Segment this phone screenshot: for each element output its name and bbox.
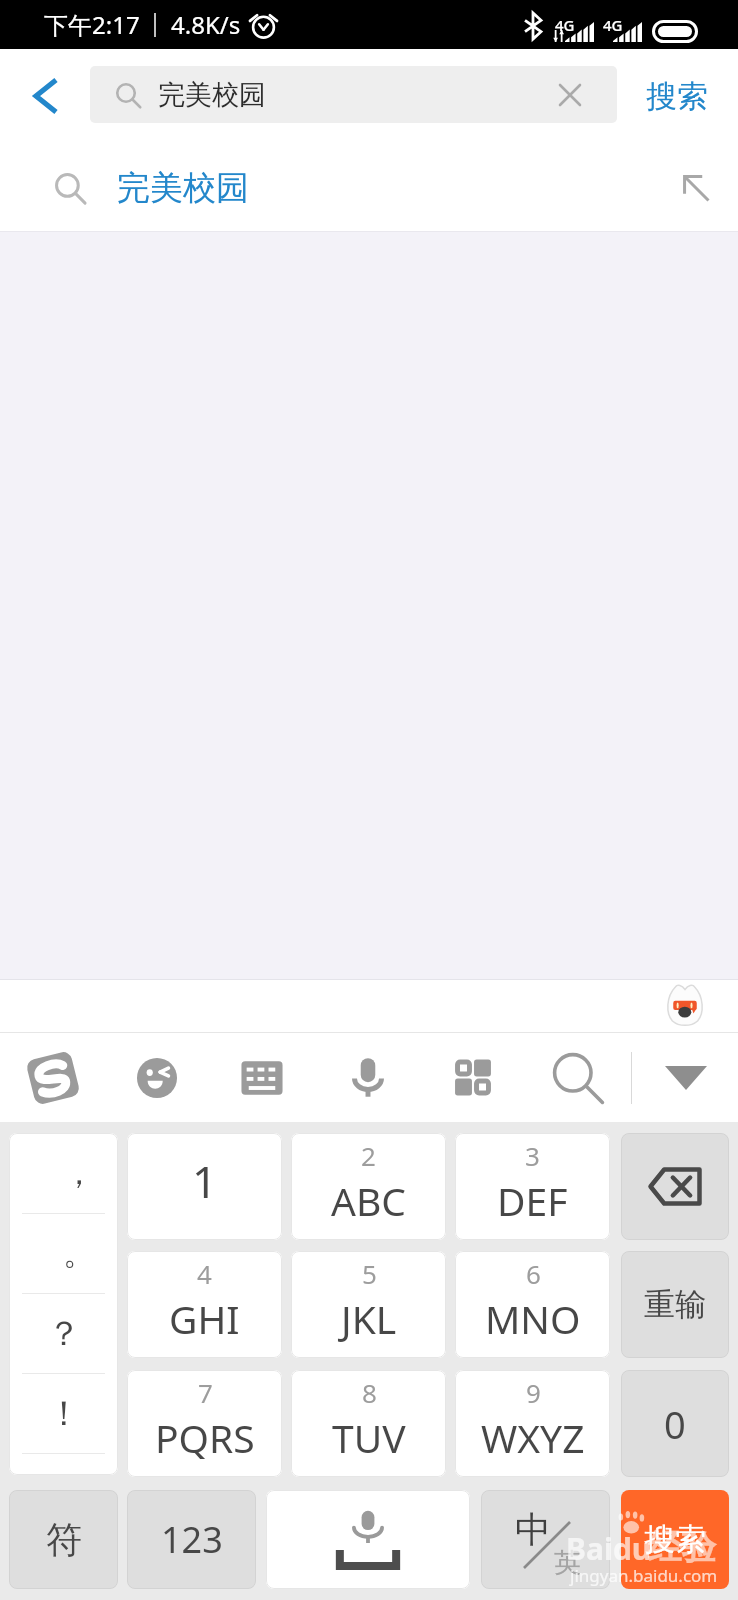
- button[interactable]: Hide keyboard: [634, 1033, 738, 1122]
- staticText: 8: [362, 1375, 377, 1410]
- staticText: 4.8K/s: [171, 8, 241, 41]
- button[interactable]: 搜索: [621, 1490, 729, 1589]
- staticText: 经验: [648, 1526, 716, 1569]
- staticText: 2: [361, 1138, 376, 1173]
- staticText: 3: [525, 1138, 540, 1173]
- button[interactable]: 4: [127, 1251, 282, 1358]
- button[interactable]: 8: [291, 1370, 446, 1477]
- button[interactable]: Back: [2, 52, 90, 140]
- button[interactable]: 1: [127, 1133, 282, 1240]
- staticText: MNO: [485, 1292, 581, 1345]
- staticText: PQRS: [155, 1411, 255, 1464]
- button[interactable]: 7: [127, 1370, 282, 1477]
- staticText: WXYZ: [481, 1411, 585, 1464]
- staticText: DEF: [497, 1174, 568, 1227]
- staticText: 搜索: [646, 77, 708, 116]
- button[interactable]: Sogou input: [9, 1033, 97, 1122]
- staticText: ！: [47, 1392, 81, 1435]
- staticText: 完美校园: [158, 78, 266, 112]
- staticText: 123: [161, 1515, 223, 1564]
- button[interactable]: ，: [9, 1133, 118, 1475]
- staticText: TUV: [332, 1411, 406, 1464]
- button[interactable]: Assistant: [664, 984, 706, 1026]
- button[interactable]: Chinese / English: [481, 1490, 610, 1589]
- staticText: GHI: [169, 1292, 240, 1345]
- staticText: 7: [198, 1375, 213, 1410]
- button[interactable]: 5: [291, 1251, 446, 1358]
- button[interactable]: Clear: [541, 66, 598, 123]
- button[interactable]: 3: [455, 1133, 610, 1240]
- button[interactable]: Search: [534, 1033, 622, 1122]
- staticText: 9: [526, 1375, 541, 1410]
- staticText: jingyan.baidu.com: [570, 1564, 718, 1587]
- button[interactable]: 搜索: [627, 49, 727, 144]
- staticText: 4: [197, 1256, 212, 1291]
- staticText: 搜索: [644, 1520, 706, 1559]
- staticText: ？: [47, 1312, 81, 1355]
- staticText: 重输: [644, 1285, 706, 1324]
- staticText: ABC: [331, 1174, 406, 1227]
- button[interactable]: Use this query: [672, 164, 720, 212]
- staticText: ，: [63, 1153, 95, 1193]
- button[interactable]: Space: [266, 1490, 470, 1589]
- button[interactable]: 123: [127, 1490, 256, 1589]
- staticText: 5: [362, 1256, 377, 1291]
- button[interactable]: Backspace: [621, 1133, 729, 1240]
- staticText: 6: [526, 1256, 541, 1291]
- staticText: Baidu: [566, 1528, 652, 1569]
- staticText: 0: [664, 1398, 686, 1450]
- button[interactable]: 2: [291, 1133, 446, 1240]
- button[interactable]: 9: [455, 1370, 610, 1477]
- button[interactable]: 完美校园: [0, 144, 738, 232]
- staticText: 完美校园: [117, 167, 249, 209]
- button[interactable]: 0: [621, 1370, 729, 1477]
- staticText: 1: [192, 1151, 218, 1211]
- staticText: 英: [554, 1546, 581, 1580]
- button[interactable]: 完美校园: [90, 66, 617, 123]
- button[interactable]: 符: [9, 1490, 118, 1589]
- staticText: 符: [46, 1517, 82, 1562]
- button[interactable]: Keyboard layout: [218, 1033, 306, 1122]
- staticText: 中: [515, 1507, 551, 1552]
- button[interactable]: Emoji: [113, 1033, 201, 1122]
- staticText: 4G: [555, 15, 575, 35]
- staticText: JKL: [341, 1292, 397, 1345]
- button[interactable]: Voice input: [324, 1033, 412, 1122]
- staticText: 。: [63, 1233, 95, 1273]
- button[interactable]: 重输: [621, 1251, 729, 1358]
- staticText: 下午2:17: [44, 8, 140, 41]
- staticText: 4G: [603, 15, 623, 35]
- button[interactable]: 6: [455, 1251, 610, 1358]
- button[interactable]: More tools: [429, 1033, 517, 1122]
